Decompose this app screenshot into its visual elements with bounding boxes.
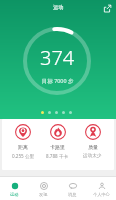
staticText: 374: [40, 44, 75, 71]
staticText: 个人中心: [93, 192, 110, 197]
button[interactable]: 运动: [0, 176, 29, 200]
staticText: 质量: [88, 144, 98, 150]
button[interactable]: 质量: [75, 119, 110, 170]
button[interactable]: 发现: [29, 176, 58, 200]
staticText: 卡路里: [50, 144, 65, 150]
staticText: 运动: [53, 4, 64, 11]
staticText: 消息: [68, 192, 77, 197]
staticText: 目标 7000 步: [42, 77, 74, 84]
staticText: 距离: [18, 144, 28, 150]
button[interactable]: 个人中心: [87, 176, 116, 200]
staticText: 0.255 公里: [12, 153, 35, 159]
staticText: 8.788 千卡: [46, 153, 69, 159]
staticText: 发现: [39, 192, 48, 197]
button[interactable]: Share: [101, 2, 114, 15]
staticText: 运动太少: [83, 153, 102, 159]
button[interactable]: 卡路里: [40, 119, 75, 170]
button[interactable]: 消息: [58, 176, 87, 200]
button[interactable]: 距离: [6, 119, 40, 170]
staticText: 运动: [10, 192, 19, 197]
